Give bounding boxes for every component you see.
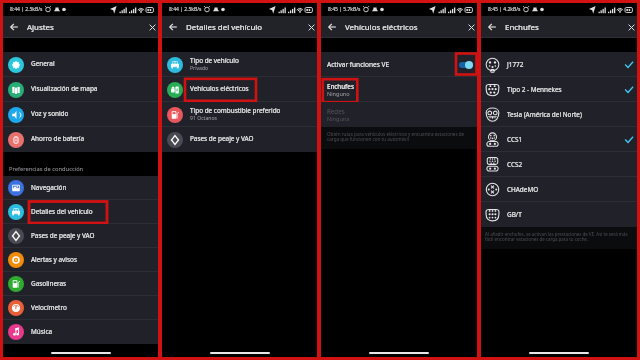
staticText: Voz y sonido xyxy=(31,109,69,118)
button[interactable]: Tesla (América del Norte) xyxy=(481,102,637,127)
staticText: Preferencias de conducción xyxy=(9,165,84,173)
staticText: Activar funciones VE xyxy=(327,60,459,69)
button[interactable]: CCS1 xyxy=(481,127,637,152)
staticText: CCS2 xyxy=(507,160,633,169)
button[interactable]: J1772 xyxy=(481,52,637,77)
button[interactable]: Enchufes xyxy=(321,77,477,102)
staticText: Tipo 2 - Mennekes xyxy=(507,85,625,94)
staticText: CCS1 xyxy=(507,135,625,144)
staticText: Alertas y avisos xyxy=(31,255,77,264)
button[interactable]: GB/T xyxy=(481,202,637,227)
button[interactable]: Activar funciones VE xyxy=(321,52,477,77)
button[interactable]: Detalles del vehículo xyxy=(3,200,158,224)
button[interactable]: Tipo de combustible preferido xyxy=(162,102,317,127)
button[interactable]: Vehículos eléctricos xyxy=(162,77,317,102)
staticText: J1772 xyxy=(507,60,625,69)
staticText: Tipo de vehículo xyxy=(190,56,239,65)
staticText: 8:44 | 2.5kB/s xyxy=(10,6,43,13)
button[interactable]: CHAdeMO xyxy=(481,177,637,202)
button[interactable]: Cerrar xyxy=(625,16,637,38)
staticText: 8:44 | 2.5kB/s xyxy=(169,6,202,13)
staticText: Vehículos eléctricos xyxy=(345,22,465,33)
staticText: Obtén rutas para vehículos eléctricos y … xyxy=(327,131,474,142)
button[interactable]: Ahorro de batería xyxy=(3,127,158,152)
button[interactable]: Navegación xyxy=(3,176,158,200)
staticText: Ahorro de batería xyxy=(31,134,85,143)
staticText: Ninguna xyxy=(327,115,350,122)
button[interactable]: Atrás xyxy=(481,16,502,38)
button[interactable]: Cerrar xyxy=(146,16,158,38)
staticText: Pases de peaje y VAO xyxy=(31,231,95,240)
button[interactable]: Cerrar xyxy=(305,16,317,38)
staticText: Tipo de combustible preferido xyxy=(190,106,281,115)
staticText: CHAdeMO xyxy=(507,185,633,194)
button[interactable]: General xyxy=(3,52,158,77)
button[interactable]: Velocímetro xyxy=(3,296,158,320)
staticText: Enchufes xyxy=(505,22,625,33)
staticText: Ajustes xyxy=(27,22,146,33)
staticText: Vehículos eléctricos xyxy=(190,84,249,93)
button[interactable]: Pases de peaje y VAO xyxy=(162,127,317,152)
button[interactable]: Visualización de mapa xyxy=(3,77,158,102)
button[interactable]: Atrás xyxy=(162,16,183,38)
button[interactable]: Alertas y avisos xyxy=(3,248,158,272)
button[interactable]: Atrás xyxy=(3,16,24,38)
button[interactable]: Cerrar xyxy=(465,16,477,38)
button[interactable]: Pases de peaje y VAO xyxy=(3,224,158,248)
staticText: Visualización de mapa xyxy=(31,84,98,93)
staticText: General xyxy=(31,59,55,68)
staticText: Pases de peaje y VAO xyxy=(190,134,254,143)
staticText: 91 Octanos xyxy=(190,115,218,122)
staticText: Enchufes xyxy=(327,82,354,90)
staticText: Redes xyxy=(327,107,345,115)
staticText: 8:45 | 4.2kB/s xyxy=(488,6,521,13)
staticText: Al añadir enchufes, se activan las prest… xyxy=(485,231,634,242)
staticText: Detalles del vehículo xyxy=(186,22,305,33)
staticText: Ninguno xyxy=(327,90,350,97)
staticText: Gasolineras xyxy=(31,279,67,288)
button[interactable]: Voz y sonido xyxy=(3,102,158,127)
button[interactable]: CCS2 xyxy=(481,152,637,177)
button[interactable]: Atrás xyxy=(321,16,342,38)
button[interactable]: Gasolineras xyxy=(3,272,158,296)
staticText: 8:45 | 5.7kB/s xyxy=(328,6,361,13)
staticText: Tesla (América del Norte) xyxy=(507,110,633,119)
staticText: GB/T xyxy=(507,210,633,219)
button[interactable]: Tipo 2 - Mennekes xyxy=(481,77,637,102)
staticText: Detalles del vehículo xyxy=(31,207,93,216)
button[interactable]: Música xyxy=(3,320,158,344)
staticText: Navegación xyxy=(31,183,67,192)
staticText: Privado xyxy=(190,65,209,72)
button[interactable]: Tipo de vehículo xyxy=(162,52,317,77)
staticText: Velocímetro xyxy=(31,303,67,312)
staticText: Música xyxy=(31,327,53,336)
